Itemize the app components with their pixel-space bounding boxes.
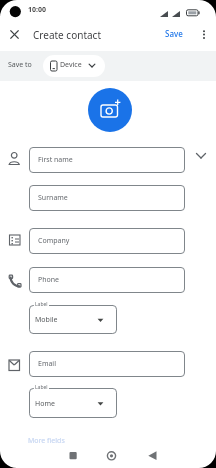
staticText: More fields [28, 436, 65, 446]
button[interactable]: Device [43, 55, 105, 77]
staticText: Label [35, 384, 48, 391]
button[interactable]: Save [165, 28, 193, 42]
button[interactable] [140, 446, 166, 468]
staticText: First name [38, 155, 73, 165]
button[interactable]: Company [29, 228, 185, 254]
staticText: Phone [38, 275, 60, 285]
staticText: Mobile [35, 315, 58, 325]
button[interactable] [99, 446, 125, 468]
button[interactable] [60, 446, 86, 468]
button[interactable]: First name [29, 147, 185, 173]
button[interactable]: Phone [29, 267, 185, 293]
staticText: Device [60, 60, 82, 70]
staticText: Email [38, 359, 56, 369]
staticText: Company [38, 236, 70, 246]
staticText: 10:00 [28, 5, 46, 15]
button[interactable]: Email [29, 351, 185, 377]
staticText: Label [35, 301, 48, 308]
staticText: Home [35, 399, 55, 409]
button[interactable] [6, 26, 23, 43]
button[interactable] [88, 88, 132, 132]
staticText: Save to [8, 60, 32, 70]
staticText: Save [165, 28, 183, 39]
button[interactable] [198, 26, 212, 43]
button[interactable]: Label [29, 305, 117, 334]
staticText: Surname [38, 193, 68, 203]
staticText: Create contact [33, 28, 102, 42]
button[interactable]: Surname [29, 185, 185, 211]
button[interactable]: More fields [26, 433, 66, 447]
button[interactable]: Label [29, 388, 117, 418]
